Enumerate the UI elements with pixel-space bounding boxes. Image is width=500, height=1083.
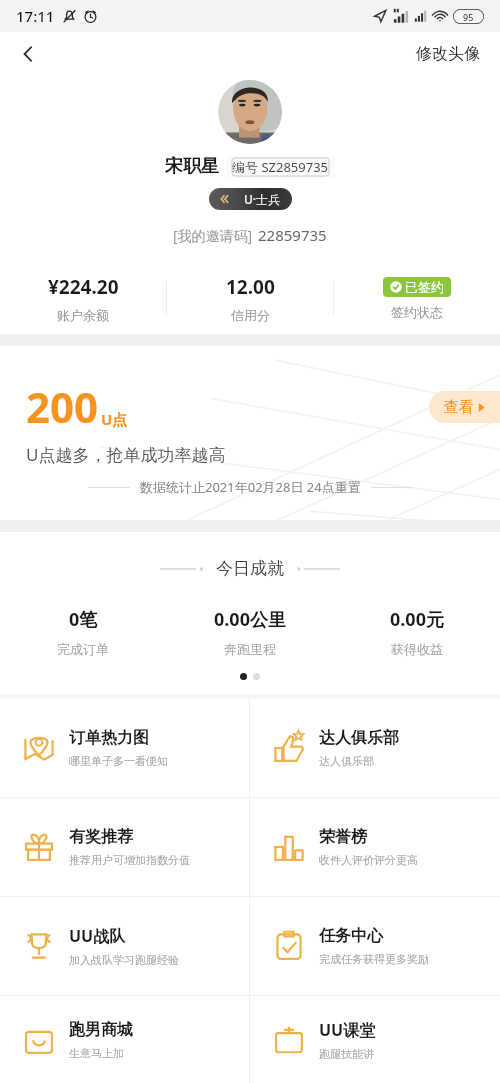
staticText: U点 xyxy=(101,409,128,429)
button[interactable]: 0笔 xyxy=(0,607,166,657)
staticText: 账户余额 xyxy=(57,307,109,323)
staticText: 完成任务获得更多奖励 xyxy=(319,952,429,966)
button[interactable]: UU战队 xyxy=(0,897,249,995)
button[interactable]: 已签约 xyxy=(334,277,500,320)
staticText: 0笔 xyxy=(69,607,98,632)
button[interactable]: U·士兵 xyxy=(209,188,292,210)
staticText: 荣誉榜 xyxy=(319,827,367,847)
button[interactable]: Back xyxy=(8,34,48,74)
staticText: 收件人评价评分更高 xyxy=(319,853,418,867)
staticText: 跑男商城 xyxy=(69,1020,133,1040)
staticText: [我的邀请码] xyxy=(173,226,253,245)
staticText: 推荐用户可增加指数分值 xyxy=(69,853,190,867)
button[interactable]: UU课堂 xyxy=(250,996,500,1083)
staticText: 宋职星 xyxy=(165,155,219,178)
staticText: 查看 xyxy=(444,398,474,417)
staticText: 17:11 xyxy=(16,6,55,26)
staticText: ¥224.20 xyxy=(48,274,119,300)
staticText: 获得收益 xyxy=(391,641,443,657)
button[interactable]: 0.00公里 xyxy=(166,607,333,657)
staticText: 生意马上加 xyxy=(69,1046,124,1060)
staticText: 0.00元 xyxy=(390,607,444,632)
button[interactable]: 12.00 xyxy=(167,274,333,323)
button[interactable]: 编号 SZ2859735 xyxy=(226,156,335,178)
button[interactable]: 有奖推荐 xyxy=(0,798,249,896)
staticText: 哪里单子多一看便知 xyxy=(69,754,168,768)
staticText: 完成订单 xyxy=(57,641,109,657)
staticText: 今日成就 xyxy=(216,558,284,579)
staticText: 编号 SZ2859735 xyxy=(232,158,329,176)
staticText: 0.00公里 xyxy=(214,607,286,632)
staticText: 加入战队学习跑腿经验 xyxy=(69,953,179,967)
staticText: 22859735 xyxy=(258,225,327,245)
button[interactable]: 荣誉榜 xyxy=(250,798,500,896)
staticText: 12.00 xyxy=(226,274,275,300)
staticText: UU课堂 xyxy=(319,1019,376,1041)
button[interactable]: 查看 xyxy=(429,391,500,423)
button[interactable]: ¥224.20 xyxy=(0,274,166,323)
button[interactable]: 跑男商城 xyxy=(0,996,249,1083)
staticText: 200 xyxy=(26,378,99,435)
staticText: U·士兵 xyxy=(244,191,281,207)
button[interactable]: Avatar xyxy=(218,80,282,144)
staticText: 95 xyxy=(463,11,474,23)
staticText: 达人俱乐部 xyxy=(319,728,399,748)
staticText: 任务中心 xyxy=(319,926,383,946)
staticText: 跑腿技能讲 xyxy=(319,1047,374,1061)
staticText: 信用分 xyxy=(231,307,270,323)
staticText: 订单热力图 xyxy=(69,728,149,748)
staticText: UU战队 xyxy=(69,925,126,947)
staticText: 数据统计止2021年02月28日 24点重置 xyxy=(140,478,361,496)
staticText: 奔跑里程 xyxy=(224,641,276,657)
button[interactable]: 修改头像 xyxy=(410,38,486,70)
staticText: 签约状态 xyxy=(391,304,443,320)
button[interactable]: 任务中心 xyxy=(250,897,500,995)
button[interactable]: 达人俱乐部 xyxy=(250,699,500,797)
staticText: 修改头像 xyxy=(416,44,480,64)
staticText: 已签约 xyxy=(405,279,444,295)
staticText: U点越多，抢单成功率越高 xyxy=(26,443,226,466)
staticText: 达人俱乐部 xyxy=(319,754,374,768)
button[interactable]: 订单热力图 xyxy=(0,699,249,797)
staticText: 有奖推荐 xyxy=(69,827,133,847)
button[interactable]: 0.00元 xyxy=(333,607,500,657)
